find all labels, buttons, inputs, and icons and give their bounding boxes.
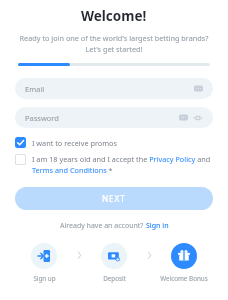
button[interactable]: Sign in (146, 221, 169, 231)
staticText: Sign in (146, 221, 169, 231)
staticText: Ready to join one of the world's largest… (17, 33, 211, 54)
staticText: Password (25, 113, 59, 123)
button[interactable]: I want to receive promos (15, 137, 213, 148)
button[interactable]: Sign up step (18, 243, 70, 283)
staticText: Sign up (33, 274, 56, 283)
staticText: Already have an account? (60, 221, 146, 231)
button[interactable]: I am 18 years old and I accept the Priva… (15, 154, 213, 175)
button[interactable]: Password (15, 107, 213, 128)
staticText: I am 18 years old and I accept the Priva… (32, 154, 213, 175)
button[interactable]: Show password (193, 113, 203, 123)
staticText: I want to receive promos (32, 138, 117, 148)
button[interactable]: Email (15, 78, 213, 99)
staticText: Welcome! (81, 7, 147, 25)
staticText: Welcome Bonus (160, 274, 208, 283)
button[interactable]: NEXT (15, 187, 213, 210)
button[interactable]: Welcome Bonus step (158, 243, 210, 283)
staticText: Email (25, 84, 45, 94)
button[interactable]: Deposit step (88, 243, 140, 283)
staticText: Deposit (103, 274, 126, 283)
staticText: NEXT (102, 193, 126, 204)
